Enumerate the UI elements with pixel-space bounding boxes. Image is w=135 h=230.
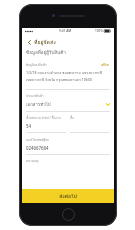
staticText: เขตบางกะปิ จังหวัด กรุงเทพมหานคร 10600 <box>26 77 92 83</box>
staticText: ที่อยู่จัดส่ง <box>34 38 56 46</box>
staticText: 9:41 AM <box>59 29 72 33</box>
staticText: เอกสารทั่วไป <box>26 101 51 108</box>
staticText: ส่งต่อไป <box>59 192 77 200</box>
button[interactable]: 024667684 <box>22 145 114 151</box>
button[interactable]: 54 <box>26 123 66 129</box>
staticText: 024667684 <box>26 145 49 151</box>
staticText: น้ำหนักรวม (กรัม) / ชิ้นงาน <box>26 116 61 121</box>
button[interactable]: แก้ไข <box>100 62 110 67</box>
staticText: 100% <box>95 29 103 33</box>
staticText: ที่อยู่จัดส่งสินค้า <box>26 62 47 67</box>
staticText: 54 <box>26 123 32 129</box>
staticText: ข้อมูลที่อยู่ผู้รับสินค้า <box>26 49 66 56</box>
staticText: ชิ้น <box>70 116 75 121</box>
staticText: ประเภทสินค้า <box>26 94 44 99</box>
staticText: แก้ไข <box>101 62 109 67</box>
button[interactable]: ส่งต่อไป <box>22 189 114 203</box>
other: Back <box>26 39 32 45</box>
button[interactable]: เอกสารทั่วไป <box>22 101 114 108</box>
staticText: หมายเหตุ <box>26 159 39 164</box>
other: Expand <box>106 103 110 106</box>
button[interactable]: Back <box>26 37 114 47</box>
other: Home <box>62 208 75 221</box>
staticText: เบอร์โทรศัพท์ผู้รับ <box>26 138 49 143</box>
staticText: 1/2/18 ถนนรามคำแหง ซอยพระราม แขวงบางกะปิ <box>26 70 103 76</box>
